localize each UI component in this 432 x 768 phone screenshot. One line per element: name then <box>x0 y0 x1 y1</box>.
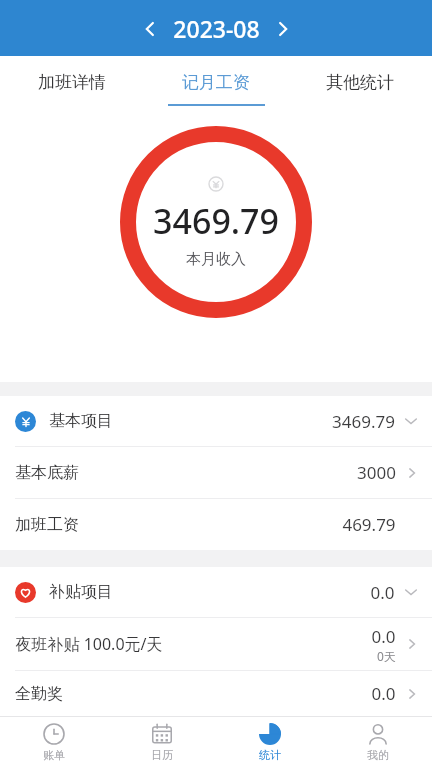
button[interactable]: 全勤奖 <box>0 671 432 716</box>
staticText: 2023-08 <box>173 13 260 44</box>
staticText: 0天 <box>377 648 396 664</box>
button[interactable]: 账单 <box>0 717 108 768</box>
staticText: 0.0 <box>371 625 396 648</box>
staticText: 账单 <box>43 748 65 762</box>
staticText: 我的 <box>367 748 389 762</box>
button[interactable]: 日历 <box>108 717 216 768</box>
staticText: 基本底薪 <box>15 463 79 483</box>
button[interactable]: 夜班补贴 100.0元/天 <box>0 618 432 670</box>
staticText: 其他统计 <box>326 72 394 93</box>
staticText: 3000 <box>357 461 396 484</box>
button[interactable]: 基本底薪 <box>0 447 432 498</box>
staticText: 3469.79 <box>153 198 279 244</box>
staticText: 本月收入 <box>186 250 246 269</box>
staticText: 加班详情 <box>38 72 106 93</box>
staticText: 夜班补贴 100.0元/天 <box>15 633 163 655</box>
button[interactable]: 统计 <box>216 717 324 768</box>
button[interactable]: Next month <box>268 14 298 44</box>
staticText: 加班工资 <box>15 515 79 535</box>
staticText: 记月工资 <box>182 72 250 93</box>
staticText: 全勤奖 <box>15 684 63 704</box>
button[interactable]: 其他统计 <box>288 56 432 108</box>
button[interactable]: Previous month <box>135 14 165 44</box>
button[interactable]: 补贴项目 <box>0 567 432 617</box>
button[interactable]: 加班工资 <box>0 499 432 550</box>
staticText: 0.0 <box>370 581 395 604</box>
staticText: 0.0 <box>371 682 396 705</box>
staticText: 469.79 <box>342 513 396 536</box>
staticText: 3469.79 <box>332 410 395 433</box>
button[interactable]: 记月工资 <box>144 56 288 108</box>
button[interactable]: 我的 <box>324 717 432 768</box>
staticText: 补贴项目 <box>49 582 113 602</box>
staticText: 日历 <box>151 748 173 762</box>
staticText: 基本项目 <box>49 411 113 431</box>
staticText: 统计 <box>259 748 281 762</box>
button[interactable]: 加班详情 <box>0 56 144 108</box>
button[interactable]: 基本项目 <box>0 396 432 446</box>
